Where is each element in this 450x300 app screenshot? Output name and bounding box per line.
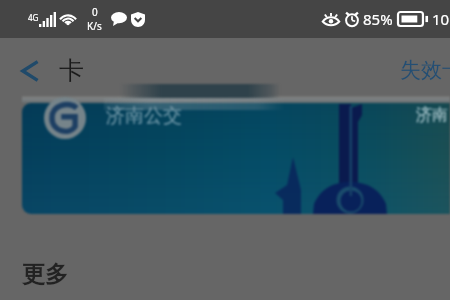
staticText: 卡 [59,55,84,86]
other: Back [20,58,40,84]
staticText: 济南公交 [106,104,182,128]
staticText: 更多 [22,260,68,289]
staticText: K/s [87,19,102,33]
staticText: 85% [363,9,393,29]
button[interactable]: 失效卡 [400,57,450,83]
staticText: 0 [92,5,98,19]
button[interactable]: Back [20,55,84,86]
button[interactable]: 济南 [22,103,450,214]
staticText: 济南 [416,105,448,125]
staticText: 10 [432,9,450,29]
staticText: 4G [28,12,39,23]
